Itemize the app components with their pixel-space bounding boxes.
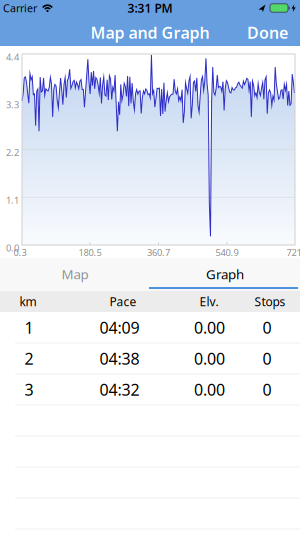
staticText: 0.00 [194, 317, 225, 338]
staticText: 3:31 PM [127, 0, 172, 16]
staticText: 2.2 [6, 146, 19, 159]
staticText: Map [61, 265, 88, 283]
staticText: 180.5 [78, 246, 101, 259]
staticText: 0 [262, 379, 271, 400]
staticText: Carrier [3, 1, 37, 15]
staticText: 0.3 [13, 246, 26, 259]
button[interactable]: Graph [150, 259, 300, 288]
staticText: 0 [262, 348, 271, 369]
staticText: 540.9 [215, 246, 238, 259]
staticText: Done [247, 22, 288, 43]
staticText: km [19, 293, 36, 309]
staticText: 1.1 [6, 194, 19, 206]
staticText: 04:09 [99, 317, 139, 338]
staticText: 04:38 [99, 348, 139, 369]
staticText: 0.00 [194, 379, 225, 400]
button[interactable]: Done [228, 19, 288, 45]
staticText: Stops [254, 293, 285, 309]
staticText: Map and Graph [90, 22, 209, 43]
staticText: 4.4 [6, 51, 19, 63]
staticText: Graph [206, 265, 244, 283]
staticText: 1 [24, 317, 33, 338]
staticText: 360.7 [147, 246, 170, 259]
staticText: 0 [262, 317, 271, 338]
staticText: 0.00 [194, 348, 225, 369]
staticText: 0.0 [6, 242, 19, 254]
staticText: 3 [24, 379, 33, 400]
staticText: Elv. [199, 293, 218, 309]
staticText: 04:32 [99, 379, 139, 400]
staticText: 3.3 [6, 99, 19, 111]
staticText: 2 [24, 348, 33, 369]
button[interactable]: Map [0, 259, 150, 288]
staticText: 721.1 [286, 246, 300, 259]
staticText: Pace [109, 293, 136, 309]
